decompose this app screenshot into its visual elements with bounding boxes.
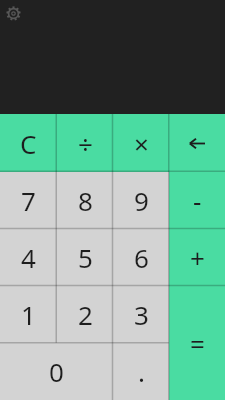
staticText: 5 bbox=[78, 240, 93, 275]
staticText: ÷ bbox=[78, 126, 93, 161]
button[interactable]: 3 bbox=[113, 286, 169, 343]
staticText: 9 bbox=[134, 183, 149, 218]
staticText: 0 bbox=[49, 354, 64, 389]
staticText: - bbox=[193, 183, 202, 218]
staticText: 1 bbox=[21, 297, 36, 332]
button[interactable]: 6 bbox=[113, 229, 169, 286]
staticText: = bbox=[190, 326, 205, 361]
button[interactable]: = bbox=[169, 286, 225, 400]
button[interactable]: 5 bbox=[57, 229, 113, 286]
button[interactable] bbox=[169, 114, 225, 172]
staticText: 7 bbox=[21, 183, 36, 218]
button[interactable]: 4 bbox=[0, 229, 57, 286]
button[interactable]: - bbox=[169, 172, 225, 229]
button[interactable]: 0 bbox=[0, 343, 113, 400]
button[interactable]: . bbox=[113, 343, 169, 400]
button[interactable]: 8 bbox=[57, 172, 113, 229]
button[interactable]: 9 bbox=[113, 172, 169, 229]
staticText: + bbox=[190, 240, 205, 275]
button[interactable]: ÷ bbox=[57, 114, 113, 172]
staticText: 6 bbox=[134, 240, 149, 275]
staticText: 4 bbox=[21, 240, 36, 275]
staticText: 8 bbox=[78, 183, 93, 218]
button[interactable]: × bbox=[113, 114, 169, 172]
button[interactable]: 2 bbox=[57, 286, 113, 343]
staticText: 2 bbox=[78, 297, 93, 332]
staticText: 3 bbox=[134, 297, 149, 332]
button[interactable]: + bbox=[169, 229, 225, 286]
button[interactable] bbox=[6, 6, 21, 21]
staticText: . bbox=[138, 354, 145, 389]
staticText: C bbox=[20, 126, 37, 161]
staticText: × bbox=[134, 126, 149, 161]
button[interactable]: 7 bbox=[0, 172, 57, 229]
button[interactable]: C bbox=[0, 114, 57, 172]
button[interactable]: 1 bbox=[0, 286, 57, 343]
